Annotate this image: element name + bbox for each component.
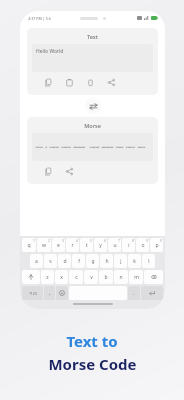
button[interactable]: 8 <box>122 238 135 252</box>
staticText: v <box>90 274 93 281</box>
button[interactable]: x <box>55 270 68 284</box>
staticText: 7 <box>118 239 120 243</box>
button[interactable]: 7 <box>108 238 121 252</box>
staticText: f <box>78 258 80 265</box>
staticText: 3 <box>62 239 64 243</box>
button[interactable]: 3 <box>52 238 65 252</box>
button[interactable]: 9 <box>136 238 149 252</box>
staticText: Text <box>32 33 153 40</box>
button[interactable]: Emoji <box>56 286 68 300</box>
button[interactable]: v <box>84 270 98 284</box>
staticText: 6 <box>104 239 106 243</box>
button[interactable]: z <box>41 270 54 284</box>
staticText: w <box>42 242 46 249</box>
button[interactable]: k <box>128 254 141 268</box>
staticText: 2 <box>48 239 50 243</box>
button[interactable]: j <box>114 254 127 268</box>
button[interactable]: 6 <box>94 238 107 252</box>
staticText: 4:37 PM | 5.6 <box>28 16 51 21</box>
button[interactable]: ?123 <box>22 286 43 300</box>
button[interactable]: Clear <box>85 77 96 88</box>
button[interactable]: a <box>30 254 43 268</box>
button[interactable]: Share <box>64 166 75 177</box>
staticText: j <box>120 258 122 265</box>
staticText: . <box>133 290 135 297</box>
staticText: n <box>119 274 123 281</box>
button[interactable]: , <box>44 286 55 300</box>
staticText: l <box>148 258 150 265</box>
staticText: Text to <box>66 331 118 351</box>
staticText: b <box>104 274 108 281</box>
button[interactable]: Shift <box>22 270 40 284</box>
staticText: Hello World <box>36 48 64 55</box>
staticText: g <box>91 258 95 265</box>
staticText: d <box>63 258 67 265</box>
button[interactable]: Backspace <box>144 270 163 284</box>
button[interactable]: Copy <box>43 166 54 177</box>
button[interactable]: g <box>86 254 99 268</box>
button[interactable]: Enter <box>141 286 163 300</box>
staticText: k <box>133 258 136 265</box>
staticText: p <box>155 242 159 249</box>
button[interactable]: b <box>99 270 113 284</box>
button[interactable]: n <box>114 270 128 284</box>
staticText: s <box>49 258 52 265</box>
staticText: e <box>57 242 60 249</box>
staticText: 8 <box>132 239 134 243</box>
button[interactable]: l <box>142 254 155 268</box>
staticText: 5 <box>90 239 92 243</box>
staticText: u <box>113 242 117 249</box>
button[interactable]: c <box>69 270 83 284</box>
staticText: 4 <box>76 239 78 243</box>
button[interactable]: Hello World <box>32 44 153 72</box>
staticText: Morse <box>32 122 153 129</box>
staticText: y <box>99 242 102 249</box>
staticText: t <box>86 242 88 249</box>
staticText: a <box>35 258 38 265</box>
staticText: r <box>71 242 74 249</box>
button[interactable]: h <box>100 254 113 268</box>
button[interactable]: 1 <box>22 238 36 252</box>
staticText: c <box>75 274 78 281</box>
staticText: 9 <box>146 239 148 243</box>
staticText: q <box>27 242 31 249</box>
staticText: x <box>60 274 63 281</box>
button[interactable]: f <box>72 254 85 268</box>
button[interactable] <box>32 133 153 161</box>
staticText: m <box>134 274 139 281</box>
button[interactable]: s <box>44 254 57 268</box>
button[interactable]: Swap <box>85 98 101 114</box>
staticText: 0 <box>160 239 162 243</box>
staticText: Morse Code <box>48 354 137 374</box>
button[interactable]: Paste <box>64 77 75 88</box>
button[interactable]: 5 <box>80 238 93 252</box>
staticText: , <box>49 290 51 297</box>
button[interactable]: m <box>129 270 143 284</box>
button[interactable]: Copy <box>43 77 54 88</box>
button[interactable]: d <box>58 254 71 268</box>
staticText: i <box>128 242 130 249</box>
staticText: o <box>141 242 145 249</box>
button[interactable]: 2 <box>37 238 51 252</box>
button[interactable]: 0 <box>150 238 163 252</box>
button[interactable]: Share <box>106 77 117 88</box>
staticText: ?123 <box>29 291 37 296</box>
staticText: h <box>105 258 109 265</box>
staticText: 1 <box>33 239 35 243</box>
button[interactable]: 4 <box>66 238 79 252</box>
staticText: z <box>46 274 49 281</box>
